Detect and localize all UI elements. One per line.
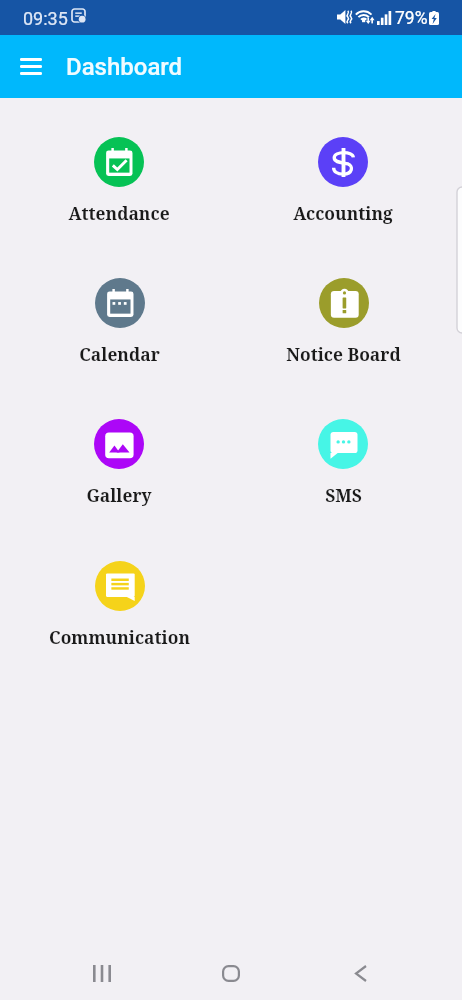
staticText: Attendance [68,201,170,225]
button[interactable]: Notice Board [243,266,443,366]
staticText: SMS [325,483,362,507]
staticText: Calendar [79,342,160,366]
button[interactable]: Back [337,953,384,993]
button[interactable]: Attendance [19,125,219,225]
button[interactable]: Recent apps [78,953,125,993]
button[interactable]: Home [207,953,254,993]
staticText: Notice Board [286,342,401,366]
staticText: Accounting [293,201,393,225]
button[interactable]: Accounting [243,125,443,225]
button[interactable]: SMS [243,407,443,507]
staticText: Gallery [86,483,152,507]
staticText: 79% [395,8,428,29]
button[interactable]: Communication [19,549,219,649]
button[interactable]: Calendar [19,266,219,366]
staticText: Communication [49,625,190,649]
button[interactable]: Open navigation menu [9,47,52,86]
staticText: Dashboard [66,53,183,81]
staticText: 09:35 [23,8,68,29]
button[interactable]: Gallery [19,407,219,507]
